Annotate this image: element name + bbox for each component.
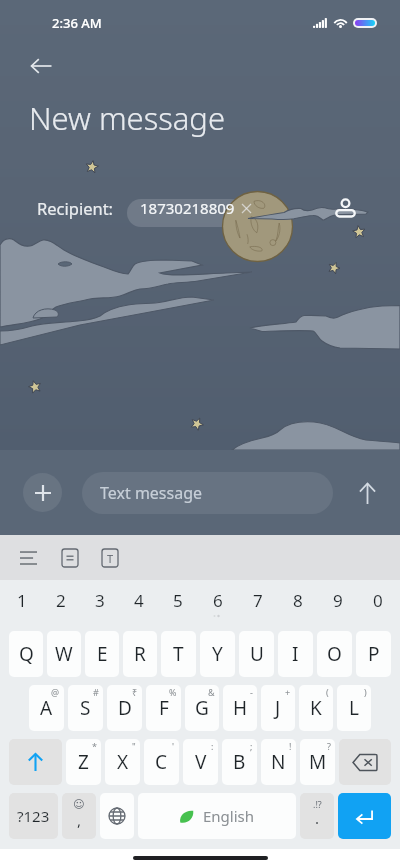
button[interactable]: Backspace	[339, 739, 391, 785]
staticText: )	[364, 686, 367, 698]
staticText: .	[315, 808, 320, 828]
button[interactable]: L	[337, 685, 371, 731]
staticText: ?	[327, 740, 331, 752]
button[interactable]: Text message	[82, 472, 333, 514]
button[interactable]: 3	[80, 580, 119, 627]
button[interactable]: 6	[198, 580, 238, 627]
staticText: 2	[56, 589, 66, 612]
staticText: '	[172, 740, 175, 752]
staticText: T	[173, 641, 184, 667]
button[interactable]: Clipboard	[54, 542, 85, 573]
button[interactable]: M	[300, 739, 335, 785]
button[interactable]: ?123	[9, 793, 58, 839]
button[interactable]: Text editing	[94, 542, 125, 573]
button[interactable]: J	[261, 685, 295, 731]
staticText: 0	[373, 589, 383, 612]
button[interactable]: Back	[21, 46, 61, 86]
button[interactable]: 0	[358, 580, 398, 627]
button[interactable]: F	[146, 685, 181, 731]
staticText: F	[159, 695, 169, 721]
staticText: ₹	[132, 686, 138, 698]
button[interactable]: R	[123, 631, 157, 677]
button[interactable]: A	[29, 685, 64, 731]
button[interactable]: E	[85, 631, 119, 677]
button[interactable]: Period	[300, 793, 334, 839]
staticText: 4	[134, 589, 144, 612]
button[interactable]: Attach	[23, 473, 62, 512]
staticText: A	[40, 695, 53, 721]
button[interactable]: D	[107, 685, 142, 731]
button[interactable]: Enter	[338, 793, 391, 839]
button[interactable]: 8	[278, 580, 318, 627]
staticText: &	[208, 686, 215, 698]
staticText: R	[134, 641, 146, 667]
button[interactable]: Menu	[13, 542, 44, 573]
button[interactable]: I	[278, 631, 313, 677]
button[interactable]: Shift	[9, 739, 62, 785]
staticText: C	[155, 749, 168, 775]
button[interactable]: 5	[158, 580, 198, 627]
staticText: H	[233, 695, 248, 721]
button[interactable]: Z	[66, 739, 101, 785]
button[interactable]: Change language	[100, 793, 134, 839]
staticText: Y	[212, 641, 223, 667]
staticText: Recipient:	[37, 197, 114, 219]
staticText: :	[211, 740, 214, 752]
staticText: V	[195, 749, 207, 775]
staticText: %	[169, 686, 177, 698]
staticText: 2:36 AM	[52, 14, 102, 32]
staticText: J	[275, 695, 281, 721]
staticText: O	[327, 641, 342, 667]
button[interactable]: 2	[41, 580, 80, 627]
staticText: X	[117, 749, 129, 775]
button[interactable]: O	[317, 631, 352, 677]
button[interactable]: 1	[2, 580, 41, 627]
button[interactable]: Y	[200, 631, 235, 677]
button[interactable]: P	[356, 631, 391, 677]
button[interactable]: W	[47, 631, 81, 677]
button[interactable]: X	[105, 739, 140, 785]
staticText: B	[233, 749, 246, 775]
button[interactable]: S	[68, 685, 103, 731]
staticText: K	[310, 695, 322, 721]
button[interactable]: 4	[119, 580, 158, 627]
staticText: 9	[333, 589, 343, 612]
staticText: 6	[213, 589, 223, 612]
button[interactable]: C	[144, 739, 179, 785]
staticText: 1	[17, 589, 27, 612]
staticText: Q	[19, 641, 34, 667]
staticText: ,	[77, 810, 82, 830]
button[interactable]: U	[239, 631, 274, 677]
button[interactable]: English	[138, 793, 296, 839]
staticText: Text message	[100, 482, 203, 504]
staticText: 3	[95, 589, 105, 612]
button[interactable]: T	[161, 631, 196, 677]
button[interactable]: 18730218809	[126, 194, 261, 222]
staticText: !	[289, 740, 292, 752]
button[interactable]: Add contact	[327, 192, 363, 224]
staticText: @	[51, 686, 60, 698]
staticText: .!?	[313, 798, 322, 810]
staticText: New message	[29, 97, 226, 139]
staticText: P	[368, 641, 380, 667]
staticText: +	[285, 686, 291, 698]
staticText: D	[118, 695, 132, 721]
button[interactable]: 9	[318, 580, 358, 627]
button[interactable]: 7	[238, 580, 278, 627]
staticText: 8	[293, 589, 303, 612]
staticText: Z	[78, 749, 89, 775]
staticText: U	[250, 641, 264, 667]
button[interactable]: V	[183, 739, 218, 785]
button[interactable]: Q	[9, 631, 43, 677]
button[interactable]: N	[261, 739, 296, 785]
button[interactable]: Emoji and comma	[62, 793, 96, 839]
staticText: "	[132, 740, 136, 752]
button[interactable]: K	[299, 685, 333, 731]
staticText: W	[55, 641, 73, 667]
button[interactable]: G	[185, 685, 219, 731]
button[interactable]: H	[223, 685, 257, 731]
button[interactable]: B	[222, 739, 257, 785]
staticText: N	[271, 749, 286, 775]
staticText: (	[326, 686, 329, 698]
button[interactable]: Send	[345, 471, 389, 515]
